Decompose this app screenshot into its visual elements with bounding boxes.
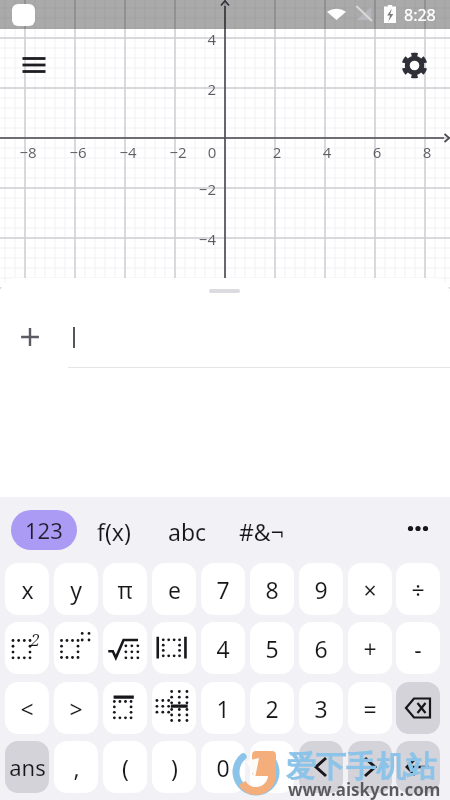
staticText: 9 xyxy=(314,574,328,605)
button[interactable]: #&¬ xyxy=(239,511,285,551)
staticText: 6 xyxy=(357,142,397,162)
staticText: −4 xyxy=(108,142,148,162)
button[interactable]: Move left xyxy=(299,741,343,793)
other: Square xyxy=(5,622,49,674)
staticText: , xyxy=(73,752,80,783)
staticText: 6 xyxy=(314,633,328,664)
button[interactable]: f(x) xyxy=(97,511,143,551)
staticText: ( xyxy=(122,752,129,783)
button[interactable]: Menu xyxy=(16,47,52,83)
staticText: π xyxy=(117,574,133,605)
staticText: > xyxy=(69,693,83,724)
staticText: 123 xyxy=(25,515,63,545)
button[interactable]: x xyxy=(5,563,49,615)
other: Mixed number xyxy=(152,682,196,734)
button[interactable]: > xyxy=(54,682,98,734)
staticText: ÷ xyxy=(411,574,425,605)
button[interactable]: 0 xyxy=(201,741,245,793)
button[interactable]: 6 xyxy=(299,622,343,674)
staticText: 8 xyxy=(265,574,279,605)
button[interactable]: ) xyxy=(152,741,196,793)
staticText: - xyxy=(414,633,422,664)
other: Move left xyxy=(299,741,343,793)
staticText: ) xyxy=(171,752,178,783)
staticText: 3 xyxy=(314,693,328,724)
other: Absolute value xyxy=(152,622,196,674)
button[interactable]: 123 xyxy=(11,510,77,550)
staticText: ans xyxy=(9,752,46,782)
staticText: −8 xyxy=(8,142,48,162)
staticText: 2 xyxy=(265,693,279,724)
staticText: × xyxy=(363,574,377,605)
button[interactable]: More options xyxy=(398,510,442,550)
staticText: 爱下手机站 xyxy=(286,748,436,786)
staticText: 4 xyxy=(216,633,230,664)
staticText: 7 xyxy=(216,574,230,605)
button[interactable]: 7 xyxy=(201,563,245,615)
staticText: 2 xyxy=(257,142,297,162)
button[interactable]: Add expression xyxy=(12,319,48,355)
button[interactable]: e xyxy=(152,563,196,615)
other: Enter xyxy=(396,741,440,793)
staticText: 8 xyxy=(407,142,447,162)
button[interactable]: , xyxy=(54,741,98,793)
staticText: −2 xyxy=(176,179,216,199)
staticText: 0 xyxy=(216,752,230,783)
staticText: 5 xyxy=(265,633,279,664)
staticText: −4 xyxy=(176,229,216,249)
button[interactable]: 5 xyxy=(250,622,294,674)
other: Move right xyxy=(348,741,392,793)
staticText: abc xyxy=(168,516,207,547)
staticText: f(x) xyxy=(97,516,131,547)
button[interactable]: 9 xyxy=(299,563,343,615)
button[interactable]: + xyxy=(348,622,392,674)
staticText: www.aiskycn.com xyxy=(288,778,441,800)
staticText: < xyxy=(20,693,34,724)
button[interactable]: Settings xyxy=(396,47,433,84)
button[interactable]: . xyxy=(250,741,294,793)
button[interactable]: Enter xyxy=(396,741,440,793)
button[interactable]: π xyxy=(103,563,147,615)
button[interactable]: = xyxy=(348,682,392,734)
other: Backspace xyxy=(396,682,440,734)
button[interactable]: Power xyxy=(54,622,98,674)
staticText: 1 xyxy=(216,693,230,724)
button[interactable]: Absolute value xyxy=(152,622,196,674)
staticText: x xyxy=(21,574,34,605)
staticText: −2 xyxy=(158,142,198,162)
button[interactable]: Overline xyxy=(103,682,147,734)
staticText: 2 xyxy=(31,629,40,651)
button[interactable]: ans xyxy=(5,741,49,793)
staticText: = xyxy=(363,693,377,724)
button[interactable]: × xyxy=(348,563,392,615)
staticText: #&¬ xyxy=(239,516,284,547)
button[interactable]: - xyxy=(396,622,440,674)
staticText: + xyxy=(363,633,377,664)
button[interactable]: Backspace xyxy=(396,682,440,734)
button[interactable]: ( xyxy=(103,741,147,793)
button[interactable]: 3 xyxy=(299,682,343,734)
button[interactable]: < xyxy=(5,682,49,734)
button[interactable]: 4 xyxy=(201,622,245,674)
staticText: e xyxy=(168,574,181,605)
button[interactable]: abc xyxy=(168,511,214,551)
staticText: y xyxy=(70,574,82,605)
staticText: −6 xyxy=(58,142,98,162)
other: Square root xyxy=(103,622,147,674)
button[interactable]: Mixed number xyxy=(152,682,196,734)
other: Overline xyxy=(103,682,147,734)
staticText: 8:28 xyxy=(404,4,436,26)
staticText: 2 xyxy=(176,79,216,99)
button[interactable]: ÷ xyxy=(396,563,440,615)
staticText: 4 xyxy=(176,29,216,49)
button[interactable]: Square root xyxy=(103,622,147,674)
button[interactable]: 2 xyxy=(250,682,294,734)
staticText: . xyxy=(269,752,276,783)
staticText: 4 xyxy=(307,142,347,162)
button[interactable]: y xyxy=(54,563,98,615)
button[interactable]: 1 xyxy=(201,682,245,734)
button[interactable]: Square xyxy=(5,622,49,674)
other: Power xyxy=(54,622,98,674)
button[interactable]: Move right xyxy=(348,741,392,793)
button[interactable]: 8 xyxy=(250,563,294,615)
